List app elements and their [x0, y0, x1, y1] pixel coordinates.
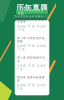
button[interactable]: 第五章 毛泽东思想概论 [17, 95, 47, 100]
staticText: 单选题 20 题 多选题 10 题 [17, 24, 46, 31]
staticText: › [46, 38, 47, 41]
button[interactable]: 第一章 马克思主义基本原理 [17, 17, 47, 33]
button[interactable]: 第三章 思想道德与法治 [17, 56, 47, 72]
staticText: › [46, 58, 47, 61]
staticText: 第二章 中国近现代史纲要 [17, 36, 45, 43]
staticText: 第五章 毛泽东思想概论 [17, 95, 45, 100]
staticText: 历年真题精选权威解析汇总 [14, 15, 50, 18]
staticText: 单选题 16 题 多选题 9 题 [17, 64, 46, 71]
staticText: 单选题 18 题 多选题 12 题 [17, 44, 46, 51]
button[interactable]: 第四章 形势与政策教育 [17, 76, 47, 92]
staticText: › [46, 77, 47, 81]
button[interactable]: 第二章 中国近现代史纲要 [17, 36, 47, 53]
staticText: 第三章 思想道德与法治 [17, 56, 45, 63]
staticText: › [46, 18, 47, 22]
staticText: 单选题 22 题 多选题 8 题 [17, 83, 46, 90]
staticText: 第四章 形势与政策教育 [17, 76, 45, 82]
staticText: 2024年度全国统考真题 [18, 8, 44, 15]
staticText: 历年真题 [16, 3, 48, 13]
staticText: 第一章 马克思主义基本原理 [17, 17, 45, 23]
staticText: › [46, 97, 47, 100]
